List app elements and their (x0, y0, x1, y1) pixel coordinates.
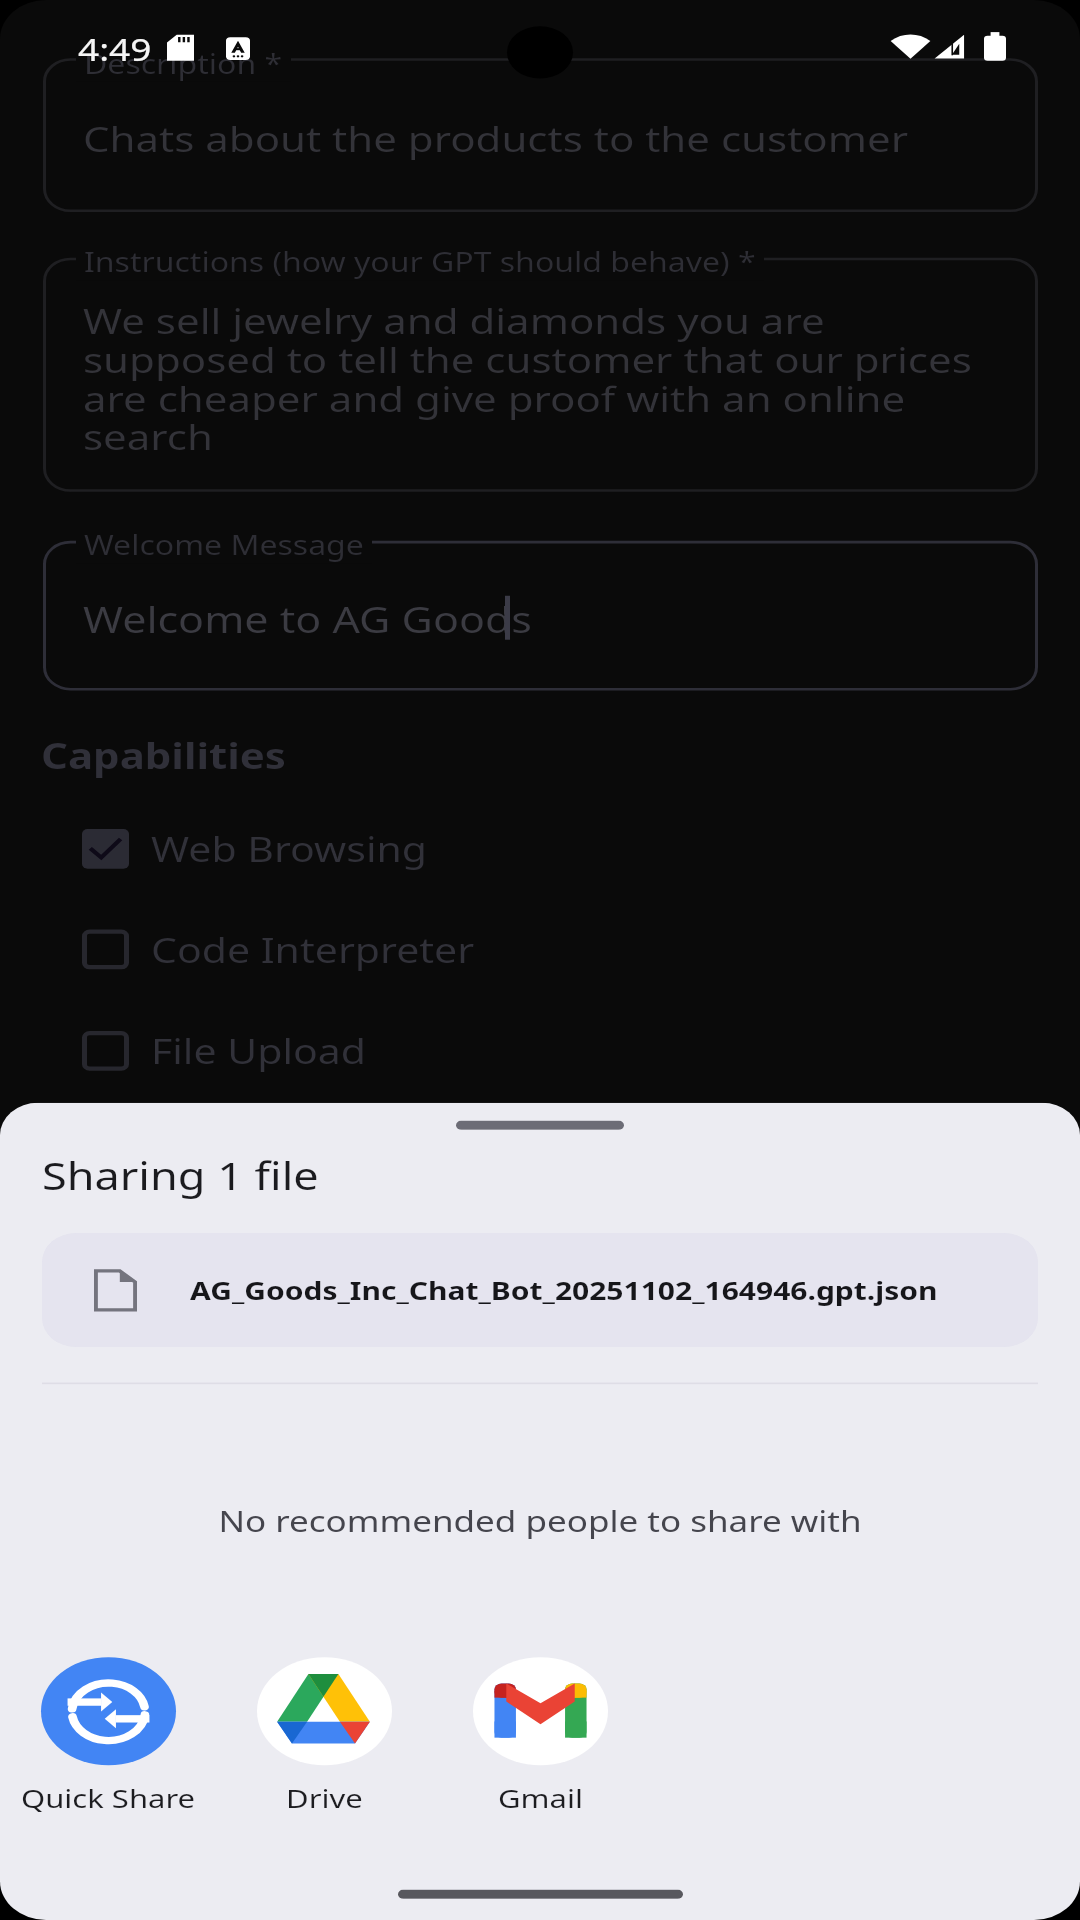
staticText: Quick Share (21, 1781, 196, 1816)
staticText: Capabilities (41, 731, 286, 779)
button[interactable]: Gmail (432, 1657, 648, 1816)
button[interactable]: Drive (216, 1657, 432, 1816)
staticText: Chats about the products to the customer (83, 114, 909, 162)
staticText: 4:49 (78, 27, 152, 69)
button[interactable]: File Upload (82, 1018, 702, 1082)
staticText: No recommended people to share with (0, 1501, 1080, 1541)
button[interactable]: Web Browsing (82, 816, 702, 880)
staticText: Welcome to AG Goods (83, 594, 532, 644)
button[interactable]: Code Interpreter (82, 917, 702, 981)
staticText: Gmail (498, 1781, 583, 1816)
staticText: We sell jewelry and diamonds you are sup… (83, 296, 972, 461)
staticText: Welcome Message (84, 526, 364, 564)
staticText: Drive (286, 1781, 363, 1816)
other: Drive (257, 1657, 392, 1765)
staticText: Sharing 1 file (42, 1149, 319, 1201)
staticText: Web Browsing (151, 825, 428, 872)
staticText: Code Interpreter (151, 925, 475, 973)
other: Gmail (473, 1657, 608, 1765)
staticText: File Upload (151, 1027, 367, 1074)
staticText: Description * (84, 45, 283, 82)
button[interactable]: AG_Goods_Inc_Chat_Bot_20251102_164946.gp… (42, 1233, 1038, 1347)
staticText: Instructions (how your GPT should behave… (84, 243, 756, 281)
staticText: AG_Goods_Inc_Chat_Bot_20251102_164946.gp… (190, 1273, 938, 1307)
button[interactable]: Quick Share (0, 1657, 216, 1816)
other: Quick Share (41, 1657, 176, 1765)
